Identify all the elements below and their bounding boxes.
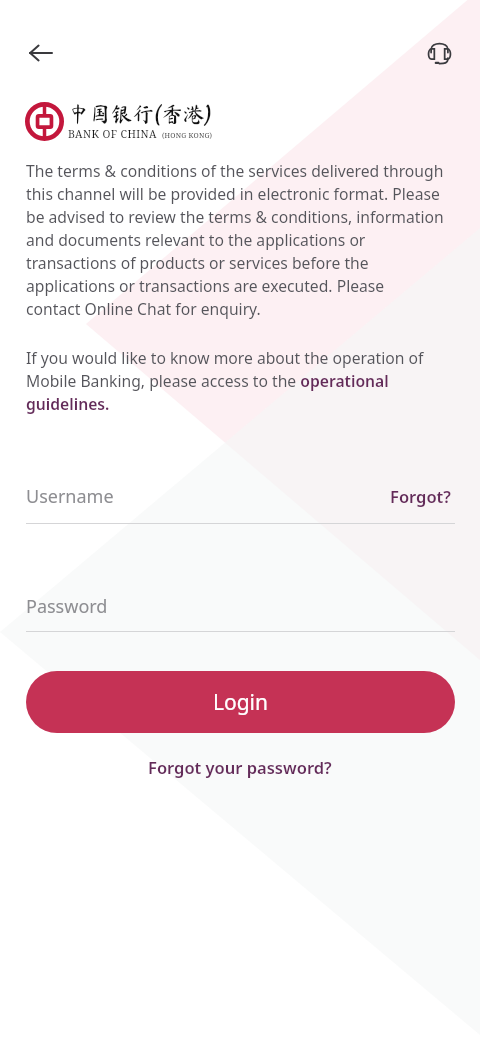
- staticText: Forgot your password?: [148, 756, 332, 778]
- button[interactable]: Login: [26, 671, 455, 733]
- staticText: If you would like to know more about the…: [26, 347, 424, 415]
- button[interactable]: Customer service: [413, 26, 465, 78]
- staticText: BANK OF CHINA: [68, 127, 157, 141]
- button[interactable]: Back: [15, 27, 67, 79]
- staticText: Login: [213, 688, 269, 717]
- staticText: Forgot?: [390, 485, 451, 507]
- button[interactable]: Forgot?: [390, 485, 451, 507]
- staticText: Username: [26, 484, 114, 509]
- staticText: 中国银行(香港): [68, 103, 212, 125]
- staticText: Password: [26, 594, 108, 619]
- staticText: (HONG KONG): [162, 131, 213, 141]
- staticText: The terms & conditions of the services d…: [26, 160, 444, 320]
- button[interactable]: Forgot your password?: [144, 752, 336, 782]
